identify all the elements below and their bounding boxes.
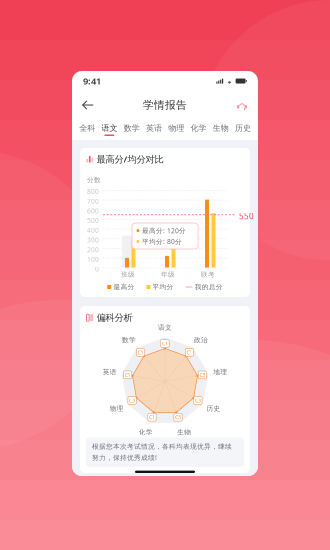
staticText: 200 xyxy=(87,245,99,254)
staticText: C1 xyxy=(149,414,155,421)
staticText: C3 xyxy=(175,414,181,421)
staticText: 9:41 xyxy=(83,75,101,87)
staticText: 550 xyxy=(239,211,254,221)
button[interactable]: 化学 xyxy=(187,120,209,139)
button[interactable]: 生物 xyxy=(209,120,232,139)
staticText: 历史 xyxy=(206,404,220,413)
staticText: C1 xyxy=(125,371,131,378)
staticText: C1 xyxy=(186,349,192,356)
staticText: 语文 xyxy=(101,123,117,133)
staticText: 最高分/均分对比 xyxy=(96,153,163,165)
staticText: 0 xyxy=(95,264,99,273)
staticText: 平均分 xyxy=(153,283,174,291)
staticText: 历史 xyxy=(235,123,251,133)
staticText: C3 xyxy=(195,397,201,404)
button[interactable]: 物理 xyxy=(165,120,187,139)
button[interactable]: 英语 xyxy=(143,120,165,139)
staticText: C1 xyxy=(162,340,168,347)
staticText: 数学 xyxy=(124,123,140,133)
staticText: 数学 xyxy=(122,336,136,344)
staticText: 600 xyxy=(87,206,99,215)
staticText: 500 xyxy=(87,216,99,225)
staticText: 全科 xyxy=(79,123,95,133)
staticText: 物理 xyxy=(168,123,184,133)
staticText: 400 xyxy=(87,226,99,235)
button[interactable]: Back xyxy=(77,94,99,116)
staticText: 化学 xyxy=(190,123,206,133)
button[interactable]: 数学 xyxy=(120,120,143,139)
staticText: 根据您本次考试情况，各科均表现优异，继续努力，保持优秀成绩! xyxy=(92,442,232,462)
staticText: C3 xyxy=(199,371,205,378)
staticText: 100 xyxy=(87,255,99,264)
staticText: 700 xyxy=(87,197,99,206)
staticText: 联考 xyxy=(201,270,215,279)
staticText: 政治 xyxy=(194,336,208,344)
button[interactable]: 全科 xyxy=(76,120,98,139)
staticText: C3 xyxy=(129,397,135,404)
staticText: 生物 xyxy=(177,428,191,436)
staticText: 英语 xyxy=(146,123,162,133)
staticText: 最高分 xyxy=(113,283,134,291)
staticText: 班级 xyxy=(121,270,135,279)
staticText: 物理 xyxy=(109,404,123,413)
staticText: 平均分: 80分 xyxy=(142,237,182,246)
staticText: 年级 xyxy=(161,270,175,279)
staticText: 最高分: 120分 xyxy=(142,226,186,235)
button[interactable]: 语文 xyxy=(98,120,120,139)
staticText: 分数 xyxy=(87,176,101,184)
staticText: 800 xyxy=(87,187,99,196)
staticText: C1 xyxy=(138,349,144,356)
staticText: 生物 xyxy=(213,123,229,133)
staticText: 语文 xyxy=(158,323,172,332)
button[interactable]: Customer service xyxy=(231,94,253,116)
staticText: 地理 xyxy=(213,368,227,376)
staticText: 偏科分析 xyxy=(96,312,132,323)
staticText: 英语 xyxy=(103,368,117,376)
button[interactable]: 历史 xyxy=(232,120,254,139)
staticText: 学情报告 xyxy=(143,98,187,111)
staticText: 300 xyxy=(87,235,99,244)
staticText: 化学 xyxy=(139,428,153,436)
staticText: 我的总分 xyxy=(195,283,223,291)
